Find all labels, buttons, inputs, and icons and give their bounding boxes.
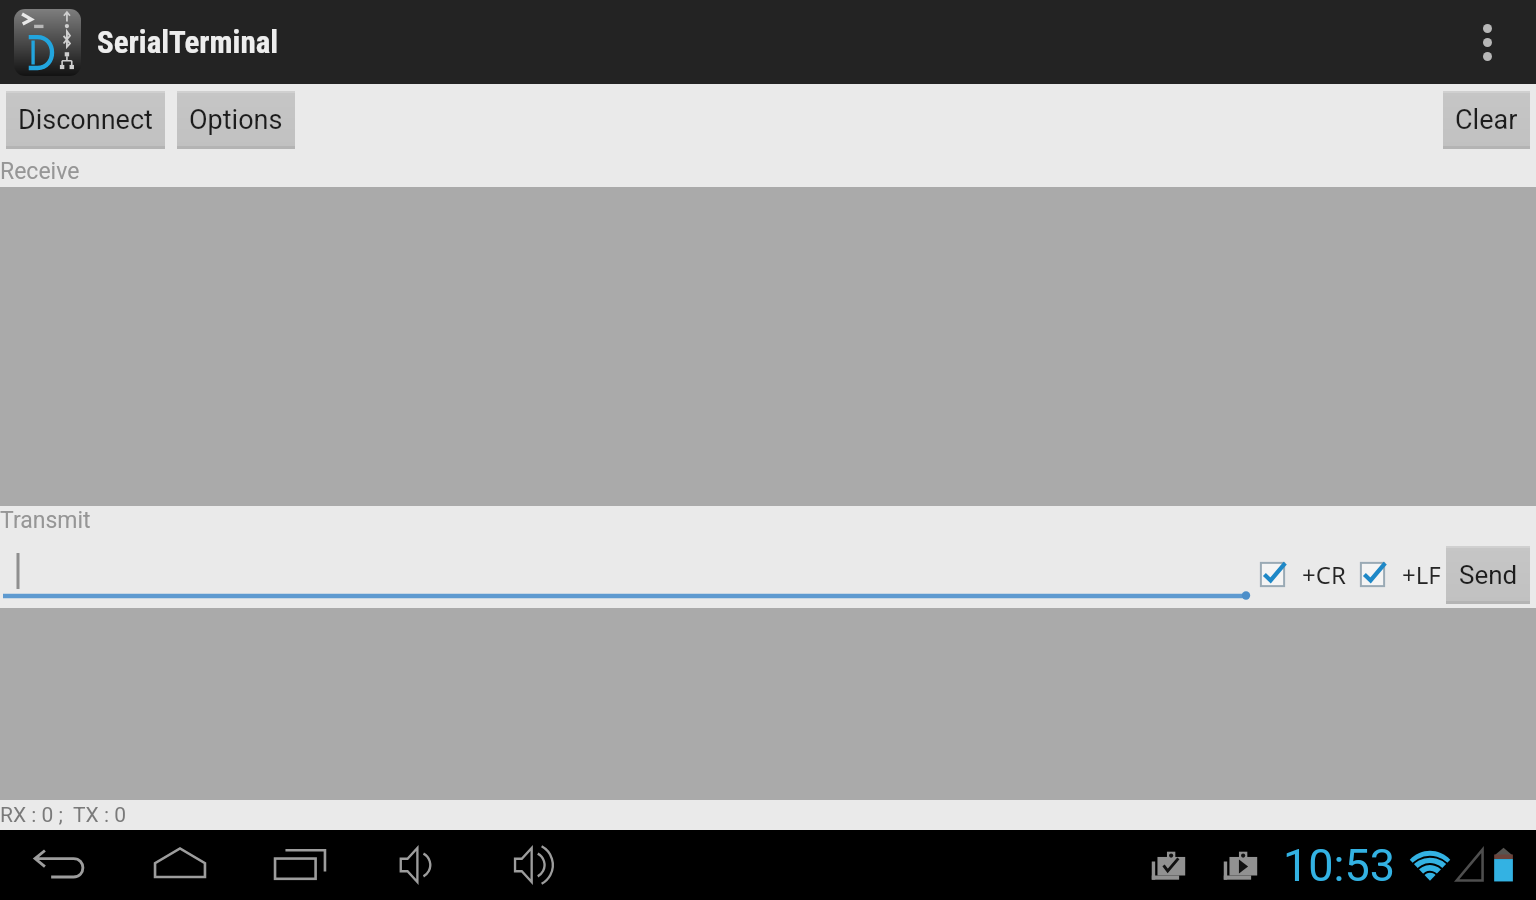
button[interactable]: Home <box>120 830 240 900</box>
staticText: +CR <box>1302 558 1346 591</box>
button[interactable]: Options <box>177 91 295 149</box>
button[interactable]: More options <box>1438 0 1536 84</box>
staticText: 10:53 <box>1283 839 1396 892</box>
staticText: Options <box>189 104 283 136</box>
staticText: SerialTerminal <box>97 24 279 60</box>
button[interactable]: Text to send <box>0 541 1259 608</box>
button[interactable]: Recent apps <box>240 830 360 900</box>
staticText: Receive <box>0 158 80 185</box>
button[interactable]: Back <box>0 830 120 900</box>
button[interactable]: Volume down <box>360 830 480 900</box>
staticText: +LF <box>1402 558 1441 591</box>
button[interactable]: SerialTerminal <box>0 0 287 84</box>
button[interactable]: Append option <box>1259 561 1286 588</box>
staticText: Clear <box>1455 104 1518 136</box>
staticText: Transmit <box>0 507 91 534</box>
button[interactable]: Append option <box>1359 561 1386 588</box>
staticText: Send <box>1459 560 1518 590</box>
staticText: RX : 0 ; TX : 0 <box>0 803 127 828</box>
button[interactable]: Volume up <box>480 830 600 900</box>
button[interactable]: Clear <box>1443 91 1530 149</box>
button[interactable]: Send <box>1446 546 1530 604</box>
button[interactable]: Disconnect <box>6 91 165 149</box>
staticText: Disconnect <box>18 104 153 136</box>
